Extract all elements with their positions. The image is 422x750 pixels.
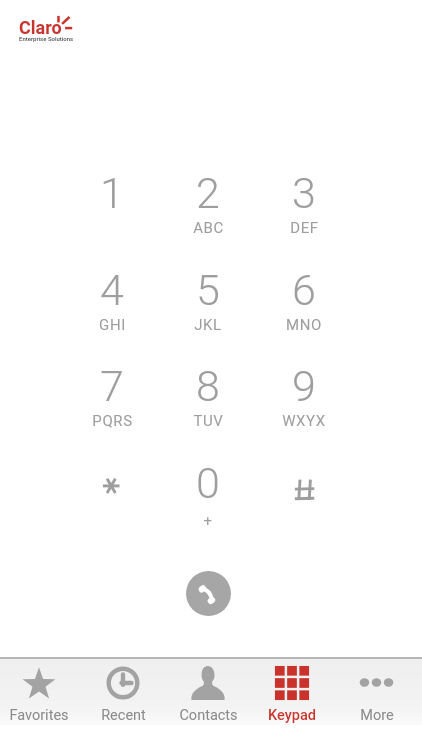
button[interactable]: Contacts — [166, 658, 250, 724]
button[interactable]: 2 — [160, 163, 256, 253]
button[interactable]: star — [64, 453, 160, 543]
staticText: 8 — [196, 361, 220, 411]
staticText: Claro — [19, 17, 62, 38]
staticText: + — [203, 512, 213, 530]
staticText: 6 — [292, 265, 316, 315]
staticText: 3 — [292, 168, 316, 218]
button[interactable]: 8 — [160, 356, 256, 446]
staticText: GHI — [99, 316, 126, 334]
button[interactable]: 6 — [256, 260, 352, 350]
button[interactable]: 3 — [256, 163, 352, 253]
staticText: 5 — [196, 265, 220, 315]
button[interactable]: Keypad — [250, 658, 334, 724]
button[interactable]: Recent — [81, 658, 165, 724]
button[interactable]: Call — [186, 571, 231, 616]
button[interactable]: 9 — [256, 356, 352, 446]
staticText: PQRS — [92, 412, 133, 430]
button[interactable]: 7 — [64, 356, 160, 446]
staticText: Enterprise Solutions — [19, 35, 74, 42]
button[interactable]: 5 — [160, 260, 256, 350]
staticText: Recent — [101, 707, 146, 724]
staticText: TUV — [193, 412, 224, 430]
button[interactable]: 0 — [160, 453, 256, 543]
staticText: 1 — [100, 168, 124, 218]
staticText: MNO — [286, 316, 322, 334]
button[interactable]: More — [335, 658, 419, 724]
button[interactable]: 4 — [64, 260, 160, 350]
staticText: WXYX — [282, 412, 326, 430]
staticText: ABC — [193, 219, 224, 237]
staticText: Keypad — [268, 707, 316, 724]
staticText: 7 — [100, 361, 124, 411]
button[interactable]: 1 — [64, 163, 160, 253]
staticText: DEF — [290, 219, 319, 237]
staticText: 9 — [292, 361, 316, 411]
button[interactable]: pound — [256, 453, 352, 543]
staticText: Favorites — [9, 707, 69, 724]
staticText: 0 — [196, 458, 220, 508]
staticText: 4 — [100, 265, 124, 315]
staticText: 2 — [196, 168, 220, 218]
staticText: JKL — [194, 316, 222, 334]
button[interactable]: Favorites — [0, 658, 81, 724]
staticText: Contacts — [179, 707, 238, 724]
staticText: More — [360, 707, 394, 724]
